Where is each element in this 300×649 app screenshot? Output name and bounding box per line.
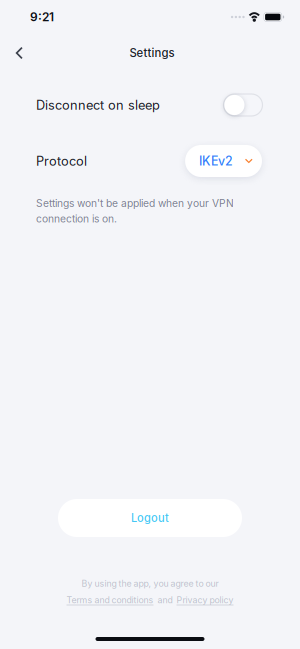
staticText: Settings: [129, 46, 174, 60]
staticText: Disconnect on sleep: [36, 97, 160, 113]
staticText: 9:21: [30, 10, 54, 24]
staticText: Terms and conditions: [66, 595, 153, 605]
staticText: Settings won't be applied when your VPN …: [36, 197, 234, 225]
button[interactable]: Disconnect on sleep: [223, 94, 262, 116]
staticText: By using the app, you agree to our: [81, 578, 218, 589]
staticText: Logout: [131, 511, 169, 525]
button[interactable]: Privacy policy: [176, 595, 233, 605]
button[interactable]: Back: [3, 38, 35, 68]
button[interactable]: Logout: [58, 499, 242, 537]
staticText: Privacy policy: [176, 595, 233, 605]
staticText: Protocol: [36, 153, 87, 169]
staticText: IKEv2: [199, 153, 233, 168]
staticText: and: [157, 595, 172, 605]
button[interactable]: Protocol, IKEv2: [185, 145, 262, 177]
button[interactable]: Terms and conditions: [66, 595, 153, 605]
